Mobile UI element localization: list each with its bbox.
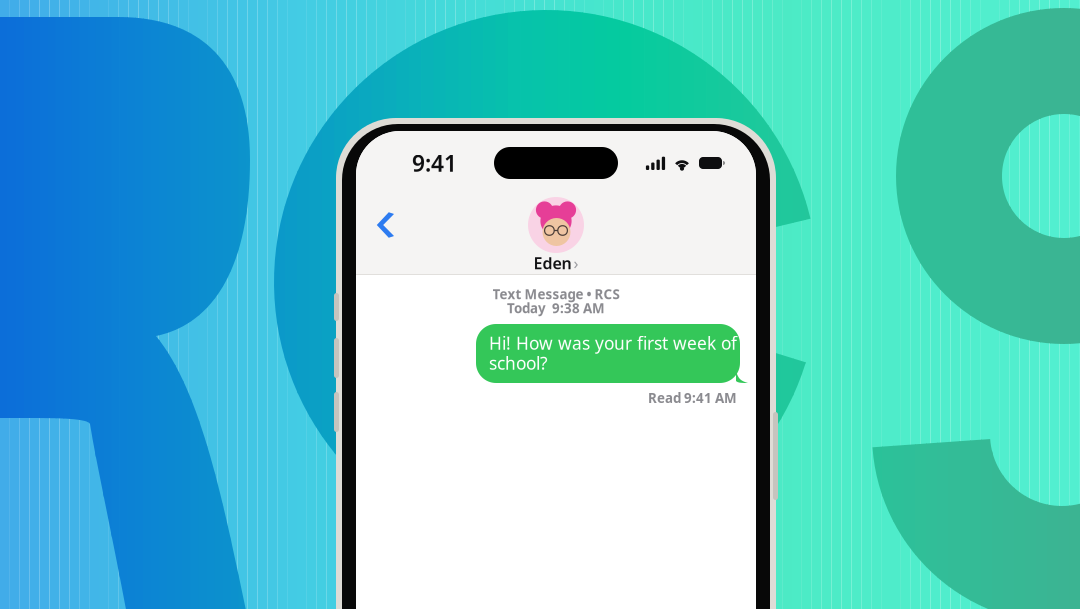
staticText: › [573, 252, 578, 274]
staticText: Today 9:38 AM [507, 299, 605, 317]
staticText: Hi! How was your first week of [489, 331, 737, 354]
staticText: 9:41 [412, 148, 457, 178]
staticText: school? [489, 351, 548, 374]
button[interactable]: Eden [528, 180, 584, 270]
button[interactable]: Back [356, 198, 414, 252]
staticText: Text Message • RCS [492, 285, 619, 303]
staticText: Read 9:41 AM [648, 389, 737, 407]
staticText: Eden [533, 252, 571, 274]
